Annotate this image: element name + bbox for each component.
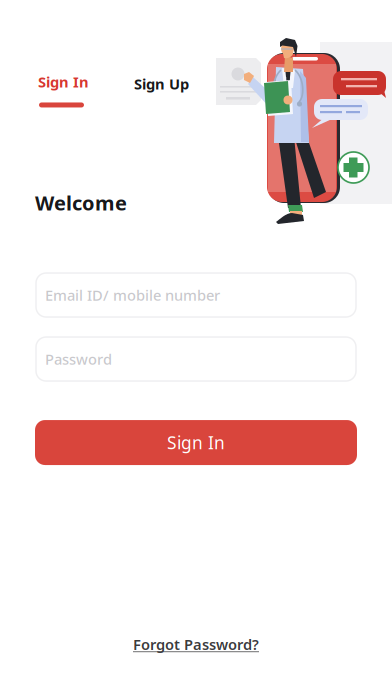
- staticText: Welcome: [35, 189, 127, 216]
- staticText: Sign In: [167, 431, 225, 454]
- button[interactable]: Forgot Password?: [0, 628, 392, 660]
- staticText: Forgot Password?: [133, 634, 259, 654]
- staticText: Sign Up: [134, 74, 189, 93]
- button[interactable]: Sign Up: [113, 72, 210, 95]
- button[interactable]: Sign In: [35, 420, 357, 465]
- button[interactable]: Sign In: [37, 72, 113, 107]
- staticText: Email ID/ mobile number: [45, 285, 220, 305]
- staticText: Sign In: [38, 72, 89, 91]
- staticText: Password: [45, 349, 112, 369]
